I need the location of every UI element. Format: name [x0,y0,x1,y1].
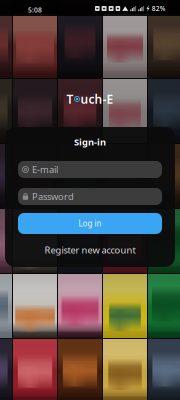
staticText: uch-E [80,91,113,107]
staticText: Sign-in [74,136,106,148]
staticText: 82% [152,4,166,13]
staticText: Log in [78,218,101,229]
staticText: Register new account [44,244,135,256]
button[interactable]: Log in [18,213,162,234]
staticText: 5:08 [28,5,42,14]
staticText: E-mail [32,163,58,176]
button[interactable]: E-mail [18,161,162,178]
button[interactable]: Register new account [5,244,175,256]
staticText: T [66,91,73,107]
button[interactable]: Password [18,188,162,205]
staticText: Password [32,190,74,203]
